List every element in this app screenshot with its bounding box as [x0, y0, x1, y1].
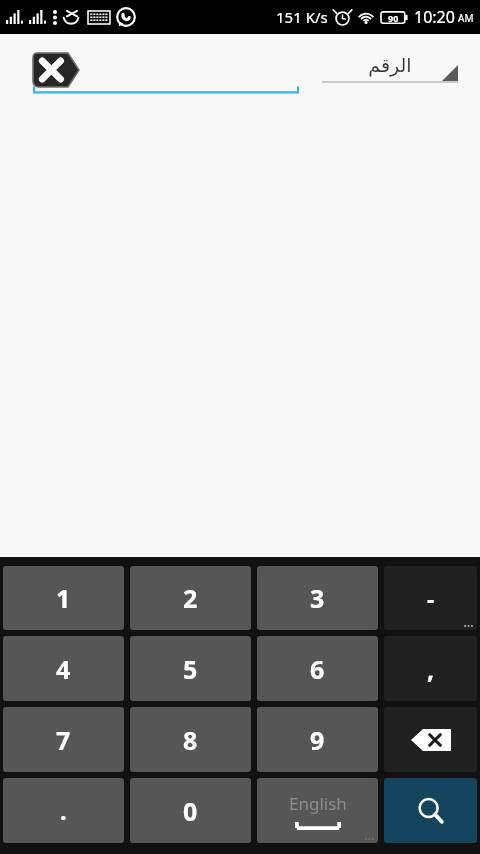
staticText: , [427, 652, 435, 686]
staticText: 10:20 [414, 6, 455, 28]
staticText: AM [458, 11, 474, 25]
button[interactable]: Search [384, 778, 477, 843]
button[interactable]: 8 [130, 707, 251, 772]
button[interactable]: 9 [257, 707, 378, 772]
button[interactable]: 1 [3, 566, 124, 630]
button[interactable]: 5 [130, 636, 251, 701]
staticText: English [289, 792, 347, 815]
button[interactable]: 2 [130, 566, 251, 630]
staticText: 0 [183, 794, 198, 828]
staticText: - [427, 583, 435, 614]
staticText: 9 [310, 723, 325, 757]
button[interactable]: English [257, 778, 378, 843]
button[interactable]: 4 [3, 636, 124, 701]
other: Clear [33, 53, 79, 87]
staticText: 6 [310, 652, 325, 686]
staticText: 4 [56, 652, 71, 686]
button[interactable]: 7 [3, 707, 124, 772]
staticText: 151 K/s [276, 7, 328, 27]
staticText: الرقم [322, 54, 458, 76]
staticText: 5 [183, 652, 198, 686]
button[interactable]: . [3, 778, 124, 843]
staticText: 3 [310, 581, 325, 615]
button[interactable]: 6 [257, 636, 378, 701]
button[interactable]: Clear [33, 52, 299, 96]
button[interactable]: , [384, 636, 477, 701]
staticText: 2 [183, 581, 198, 615]
staticText: 1 [56, 581, 71, 615]
staticText: 8 [183, 723, 198, 757]
button[interactable]: 0 [130, 778, 251, 843]
button[interactable]: - [384, 566, 477, 630]
button[interactable]: الرقم [322, 54, 458, 94]
button[interactable]: 3 [257, 566, 378, 630]
button[interactable]: Backspace [384, 707, 477, 772]
staticText: . [60, 794, 67, 827]
staticText: 90 [388, 12, 399, 24]
staticText: 7 [56, 723, 71, 757]
